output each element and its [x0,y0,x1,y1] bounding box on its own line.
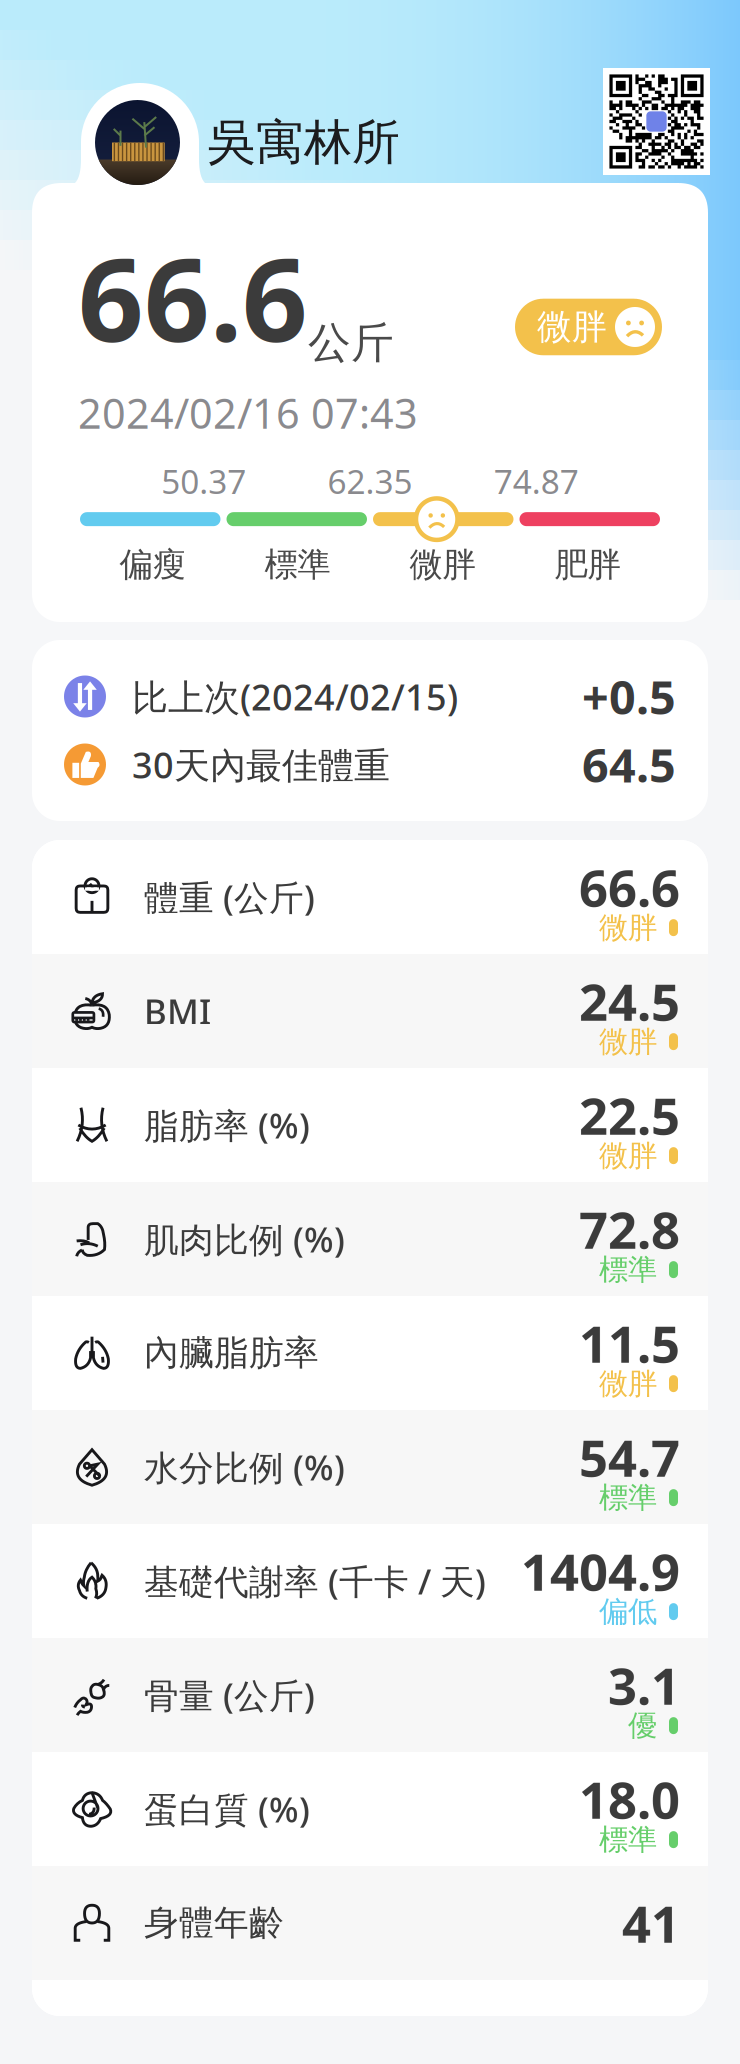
staticText: 41 [622,1889,680,1957]
staticText: 微胖 [599,1024,657,1060]
staticText: 比上次(2024/02/15) [132,673,458,720]
staticText: 水分比例 (%) [144,1444,345,1490]
staticText: 62.35 [327,459,412,503]
button[interactable]: 基礎代謝率 (千卡 / 天) [32,1524,708,1638]
staticText: 偏低 [599,1594,657,1630]
staticText: 吳寓林所 [208,113,400,172]
button[interactable]: 蛋白質 (%) [32,1752,708,1866]
staticText: 基礎代謝率 (千卡 / 天) [144,1558,486,1604]
button[interactable]: 吳寓林所 [0,0,740,185]
staticText: 標準 [599,1822,657,1858]
button[interactable]: BMI [32,954,708,1068]
button[interactable]: 體重 (公斤) [32,840,708,954]
staticText: 標準 [599,1480,657,1516]
staticText: 體重 (公斤) [144,874,315,920]
staticText: 2024/02/16 07:43 [78,385,418,440]
staticText: 1404.9 [521,1537,680,1605]
staticText: +0.5 [582,665,676,727]
staticText: 優 [628,1708,657,1744]
button[interactable]: 比上次(2024/02/15) [32,662,708,730]
button[interactable]: 水分比例 (%) [32,1410,708,1524]
button[interactable]: 肌肉比例 (%) [32,1182,708,1296]
staticText: 標準 [264,544,330,585]
staticText: 內臟脂肪率 [144,1332,319,1374]
button[interactable]: 身體年齡 [32,1866,708,1980]
staticText: 微胖 [599,910,657,946]
staticText: 66.6 [579,853,680,921]
staticText: 脂肪率 (%) [144,1102,310,1148]
staticText: 公斤 [308,317,394,369]
staticText: 66.6 [78,221,308,373]
button[interactable]: 脂肪率 (%) [32,1068,708,1182]
staticText: 24.5 [579,967,680,1035]
button[interactable]: 骨量 (公斤) [32,1638,708,1752]
staticText: 30天內最佳體重 [132,741,390,788]
staticText: 偏瘦 [119,544,185,585]
button[interactable]: My QR code [603,68,710,175]
staticText: BMI [144,988,211,1034]
staticText: 肌肉比例 (%) [144,1216,345,1262]
staticText: 54.7 [579,1423,680,1491]
staticText: 3.1 [608,1651,680,1719]
staticText: 18.0 [579,1765,680,1833]
staticText: 微胖 [409,544,475,585]
staticText: 11.5 [579,1309,680,1377]
staticText: 標準 [599,1252,657,1288]
staticText: 肥胖 [554,544,620,585]
staticText: 微胖 [599,1138,657,1174]
staticText: 72.8 [579,1195,680,1263]
staticText: 蛋白質 (%) [144,1786,310,1832]
staticText: 64.5 [582,733,676,795]
button[interactable]: 內臟脂肪率 [32,1296,708,1410]
staticText: 微胖 [599,1366,657,1402]
staticText: 微胖 [537,306,607,348]
button[interactable]: 30天內最佳體重 [32,730,708,798]
staticText: 骨量 (公斤) [144,1672,315,1718]
staticText: 身體年齡 [144,1902,284,1944]
staticText: 50.37 [161,459,246,503]
staticText: 22.5 [579,1081,680,1149]
staticText: 74.87 [494,459,579,503]
